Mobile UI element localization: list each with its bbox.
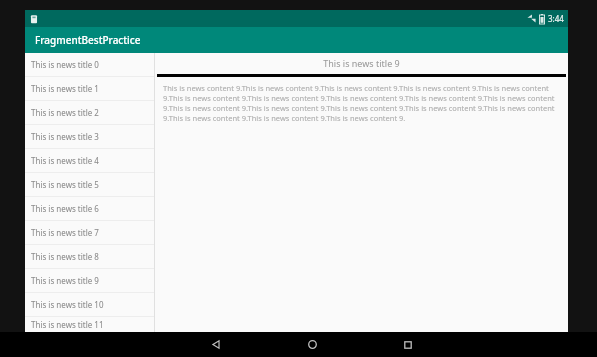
staticText: This is news title 0 bbox=[31, 59, 99, 70]
staticText: This is news title 1 bbox=[31, 83, 99, 94]
staticText: This is news title 10 bbox=[31, 299, 104, 310]
button[interactable]: Back bbox=[198, 332, 234, 357]
button[interactable]: Recent apps bbox=[390, 332, 426, 357]
staticText: This is news title 7 bbox=[31, 227, 99, 238]
staticText: This is news title 11 bbox=[31, 319, 104, 330]
staticText: This is news title 2 bbox=[31, 107, 99, 118]
button[interactable]: Home bbox=[294, 332, 330, 357]
button[interactable]: This is news title 11 bbox=[25, 317, 154, 332]
button[interactable]: This is news title 10 bbox=[25, 293, 154, 316]
staticText: FragmentBestPractice bbox=[35, 33, 141, 47]
button[interactable]: This is news title 8 bbox=[25, 245, 154, 268]
staticText: This is news title 3 bbox=[31, 131, 99, 142]
staticText: This is news title 6 bbox=[31, 203, 99, 214]
staticText: This is news title 9 bbox=[323, 57, 400, 69]
staticText: This is news title 8 bbox=[31, 251, 99, 262]
staticText: This is news title 9 bbox=[31, 275, 99, 286]
staticText: 3:44 bbox=[548, 13, 564, 24]
button[interactable]: This is news title 7 bbox=[25, 221, 154, 244]
button[interactable]: This is news title 5 bbox=[25, 173, 154, 196]
button[interactable]: This is news title 3 bbox=[25, 125, 154, 148]
button[interactable]: FragmentBestPractice bbox=[25, 27, 568, 53]
button[interactable]: This is news title 1 bbox=[25, 77, 154, 100]
staticText: This is news title 4 bbox=[31, 155, 99, 166]
button[interactable]: This is news title 4 bbox=[25, 149, 154, 172]
button[interactable]: This is news title 2 bbox=[25, 101, 154, 124]
staticText: This is news title 5 bbox=[31, 179, 99, 190]
button[interactable]: This is news title 6 bbox=[25, 197, 154, 220]
button[interactable]: This is news title 0 bbox=[25, 53, 154, 76]
staticText: This is news content 9.This is news cont… bbox=[163, 83, 560, 123]
button[interactable]: This is news title 9 bbox=[25, 269, 154, 292]
